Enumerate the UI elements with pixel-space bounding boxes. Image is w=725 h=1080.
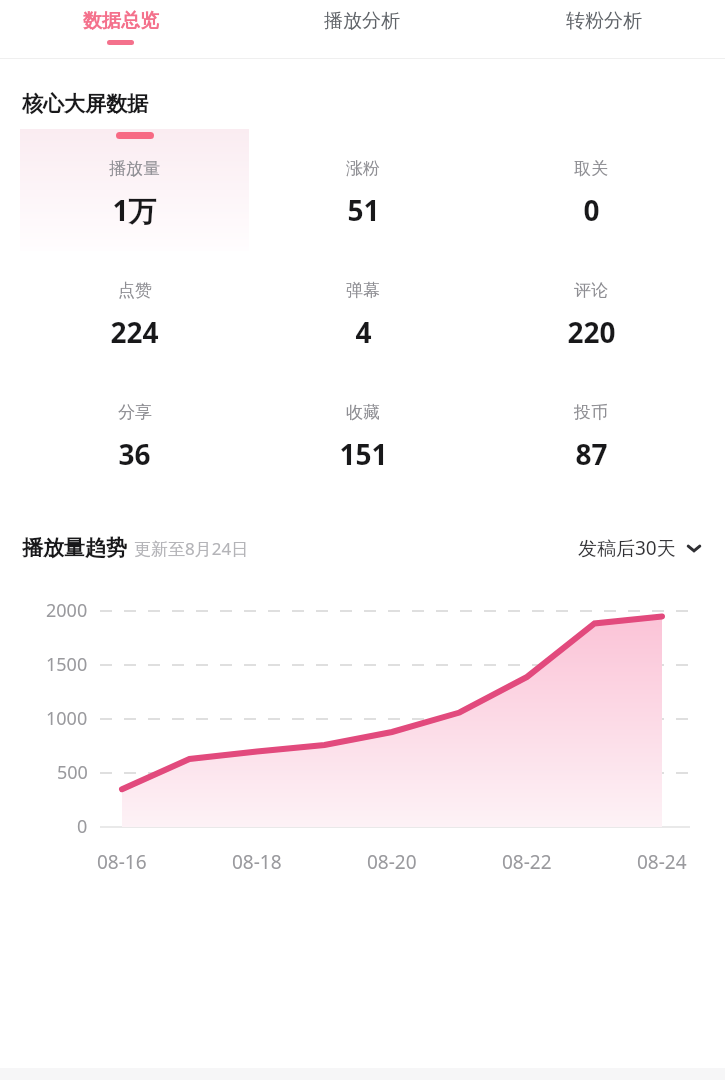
button[interactable]: 点赞 [20, 251, 249, 373]
staticText: 弹幕 [346, 280, 380, 301]
staticText: 220 [567, 313, 616, 351]
button[interactable]: 取关 [477, 129, 705, 251]
button[interactable]: 转粉分析 [483, 0, 725, 58]
staticText: 分享 [118, 402, 152, 423]
staticText: 08-20 [367, 849, 417, 875]
staticText: 评论 [574, 280, 608, 301]
button[interactable]: 弹幕 [249, 251, 477, 373]
staticText: 2000 [46, 598, 88, 623]
staticText: 取关 [574, 158, 608, 179]
staticText: 500 [57, 760, 88, 785]
staticText: 51 [347, 191, 380, 229]
button[interactable]: 播放分析 [241, 0, 483, 58]
staticText: 0 [77, 814, 88, 839]
button[interactable]: 数据总览 [0, 0, 241, 58]
button[interactable]: 投币 [477, 373, 705, 495]
staticText: 0 [583, 191, 600, 229]
staticText: 转粉分析 [566, 9, 642, 33]
button[interactable]: 评论 [477, 251, 705, 373]
staticText: 涨粉 [346, 158, 380, 179]
button[interactable]: 发稿后30天 [574, 529, 707, 567]
staticText: 151 [339, 435, 388, 473]
staticText: 08-24 [637, 849, 687, 875]
staticText: 投币 [574, 402, 608, 423]
staticText: 1万 [112, 191, 157, 229]
other: 选择时间范围 [685, 539, 703, 557]
staticText: 更新至8月24日 [134, 537, 249, 560]
button[interactable]: 涨粉 [249, 129, 477, 251]
staticText: 1500 [46, 652, 88, 677]
staticText: 点赞 [118, 280, 152, 301]
staticText: 1000 [46, 706, 88, 731]
staticText: 播放量 [109, 158, 160, 179]
staticText: 收藏 [346, 402, 380, 423]
staticText: 08-16 [97, 849, 147, 875]
staticText: 发稿后30天 [578, 535, 676, 561]
staticText: 播放量趋势 [22, 535, 127, 561]
staticText: 播放分析 [324, 9, 400, 33]
staticText: 4 [355, 313, 372, 351]
button[interactable]: 分享 [20, 373, 249, 495]
staticText: 08-22 [502, 849, 552, 875]
button[interactable]: 播放量 [20, 129, 249, 251]
staticText: 核心大屏数据 [22, 91, 148, 117]
staticText: 08-18 [232, 849, 282, 875]
staticText: 数据总览 [83, 9, 159, 33]
staticText: 36 [118, 435, 151, 473]
staticText: 87 [575, 435, 608, 473]
button[interactable]: 收藏 [249, 373, 477, 495]
staticText: 224 [110, 313, 159, 351]
